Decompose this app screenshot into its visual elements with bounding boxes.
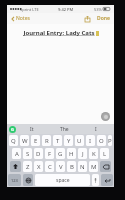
staticText: 123	[11, 178, 18, 183]
button[interactable]: 123	[8, 174, 21, 186]
staticText: Z	[26, 163, 30, 171]
staticText: Done	[97, 15, 110, 22]
staticText: I	[95, 126, 97, 133]
button[interactable]: Grammarly	[9, 126, 16, 133]
staticText: J	[82, 150, 84, 158]
button[interactable]: S	[23, 148, 32, 159]
button[interactable]: E	[31, 135, 40, 146]
button[interactable]: T	[53, 135, 62, 146]
button[interactable]: V	[56, 161, 65, 172]
button[interactable]: The	[48, 124, 80, 134]
staticText: S	[26, 150, 30, 158]
staticText: A	[15, 150, 19, 158]
button[interactable]: L	[100, 148, 109, 159]
button[interactable]: Share	[83, 14, 92, 23]
button[interactable]: key	[23, 174, 33, 186]
staticText: L	[103, 150, 107, 158]
button[interactable]: space	[35, 174, 90, 186]
button[interactable]: F	[45, 148, 54, 159]
staticText: Notes	[16, 15, 30, 22]
button[interactable]: M	[89, 161, 98, 172]
staticText: space	[56, 177, 70, 184]
staticText: H	[69, 150, 74, 158]
button[interactable]: P	[108, 135, 112, 146]
button[interactable]: C	[45, 161, 54, 172]
button[interactable]: N	[78, 161, 87, 172]
staticText: T	[56, 137, 60, 145]
button[interactable]: H	[67, 148, 76, 159]
staticText: 53%	[94, 7, 102, 12]
staticText: O	[99, 137, 104, 145]
staticText: G	[11, 127, 14, 132]
staticText: It	[30, 126, 34, 133]
button[interactable]: B	[67, 161, 76, 172]
staticText: K	[92, 150, 96, 158]
staticText: Y	[67, 137, 71, 145]
button[interactable]: D	[34, 148, 43, 159]
staticText: I	[89, 137, 92, 145]
staticText: W	[22, 137, 28, 145]
button[interactable]: key	[101, 174, 113, 186]
staticText: The	[60, 126, 69, 133]
button[interactable]: Done	[96, 14, 111, 23]
staticText: B	[70, 163, 74, 171]
staticText: F	[48, 150, 52, 158]
staticText: U	[77, 137, 82, 145]
staticText: 9:42 PM	[58, 7, 74, 12]
button[interactable]: AssistiveTouch	[101, 112, 110, 121]
staticText: N	[80, 163, 85, 171]
button[interactable]: I	[80, 124, 112, 134]
button[interactable]: W	[20, 135, 29, 146]
button[interactable]: A	[12, 148, 21, 159]
button[interactable]: G	[56, 148, 65, 159]
staticText: G	[58, 150, 63, 158]
button[interactable]: O	[97, 135, 106, 146]
staticText: Sprint LTE	[20, 7, 39, 12]
staticText: C	[48, 163, 52, 171]
staticText: D	[36, 150, 41, 158]
button[interactable]: R	[42, 135, 51, 146]
staticText: P	[108, 137, 112, 145]
button[interactable]: It	[16, 124, 48, 134]
button[interactable]: X	[34, 161, 43, 172]
button[interactable]: key	[10, 161, 21, 172]
button[interactable]: key	[92, 174, 99, 186]
staticText: E	[34, 137, 38, 145]
button[interactable]: Notes	[10, 14, 31, 23]
staticText: X	[37, 163, 41, 171]
button[interactable]: Q	[9, 135, 18, 146]
staticText: V	[59, 163, 63, 171]
staticText: R	[45, 137, 49, 145]
button[interactable]: K	[89, 148, 98, 159]
button[interactable]: U	[75, 135, 84, 146]
button[interactable]: J	[78, 148, 87, 159]
button[interactable]: Y	[64, 135, 73, 146]
staticText: M	[91, 163, 97, 171]
staticText: Q	[11, 137, 16, 145]
button[interactable]: key	[100, 161, 111, 172]
button[interactable]: Z	[23, 161, 32, 172]
button[interactable]: I	[86, 135, 95, 146]
staticText: Journal Entry: Lady Cats	[23, 29, 95, 37]
